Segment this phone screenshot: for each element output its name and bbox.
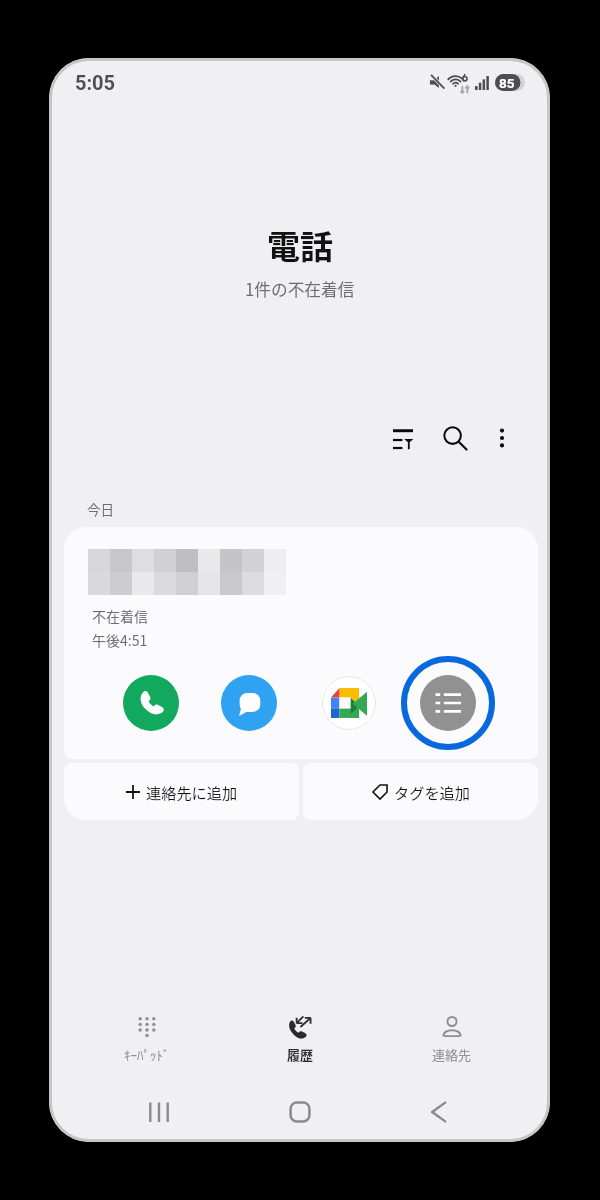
- staticText: 履歴: [287, 1045, 314, 1064]
- button[interactable]: Video call: [322, 676, 376, 730]
- button[interactable]: Filter: [379, 414, 427, 462]
- button[interactable]: タグを追加: [303, 763, 538, 820]
- button[interactable]: Call details: [401, 656, 495, 750]
- button[interactable]: 履歴: [224, 992, 376, 1064]
- button[interactable]: Home: [274, 1086, 326, 1138]
- staticText: 85: [499, 75, 515, 91]
- button[interactable]: 連絡先: [376, 992, 528, 1064]
- staticText: 不在着信: [92, 606, 148, 626]
- button[interactable]: 連絡先に追加: [64, 763, 299, 820]
- staticText: ｷｰﾊﾟｯﾄﾞ: [124, 1045, 170, 1064]
- staticText: 連絡先に追加: [146, 781, 238, 803]
- button[interactable]: Recents: [133, 1086, 185, 1138]
- button[interactable]: Message: [221, 675, 277, 731]
- staticText: 午後4:51: [92, 630, 148, 650]
- button[interactable]: ｷｰﾊﾟｯﾄﾞ: [71, 992, 223, 1064]
- staticText: タグを追加: [394, 781, 470, 803]
- staticText: 電話: [267, 221, 333, 269]
- staticText: 今日: [87, 499, 114, 519]
- staticText: 連絡先: [432, 1045, 472, 1064]
- button[interactable]: Back: [413, 1086, 465, 1138]
- button[interactable]: More options: [478, 414, 526, 462]
- staticText: 5:05: [75, 71, 116, 94]
- button[interactable]: Call: [123, 675, 179, 731]
- button[interactable]: Search: [431, 414, 479, 462]
- button[interactable]: 不在着信: [64, 527, 538, 759]
- staticText: 1件の不在着信: [245, 277, 355, 301]
